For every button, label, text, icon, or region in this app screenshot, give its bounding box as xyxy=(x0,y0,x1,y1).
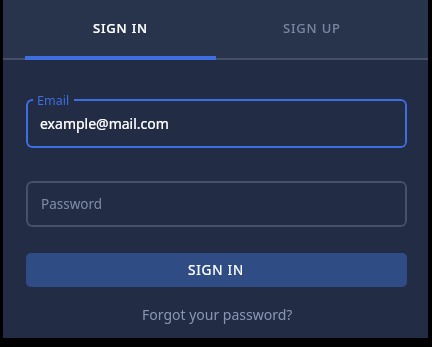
staticText: Password xyxy=(41,195,103,213)
button[interactable]: example@mail.com xyxy=(26,99,407,148)
button[interactable]: SIGN UP xyxy=(216,0,407,56)
button[interactable]: SIGN IN xyxy=(26,253,407,287)
button[interactable]: Password xyxy=(26,181,407,227)
staticText: SIGN IN xyxy=(93,19,148,37)
staticText: Email xyxy=(37,92,70,109)
staticText: example@mail.com xyxy=(40,114,169,133)
button[interactable]: SIGN IN xyxy=(25,0,216,56)
staticText: Forgot your password? xyxy=(142,305,293,324)
staticText: SIGN IN xyxy=(188,261,245,279)
button[interactable]: Forgot your password? xyxy=(142,305,293,324)
staticText: SIGN UP xyxy=(283,19,341,37)
